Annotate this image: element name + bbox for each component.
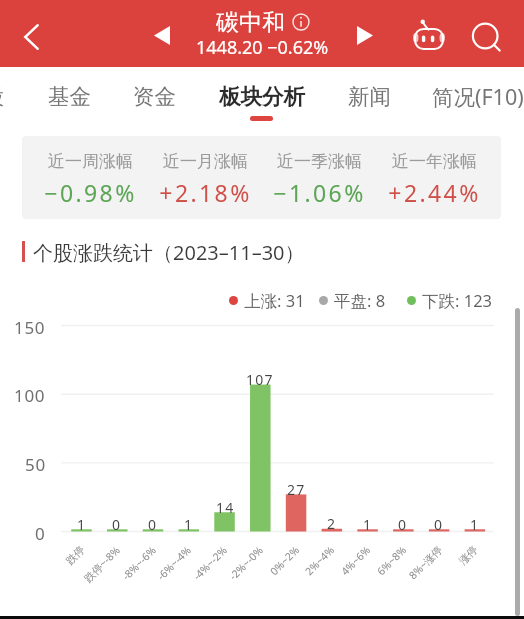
button[interactable]: 近一月涨幅	[145, 136, 265, 219]
staticText: −0.98%	[44, 177, 137, 208]
staticText: 简况(F10)	[432, 82, 524, 111]
staticText: 个股涨跌统计（2023–11–30）	[33, 239, 305, 266]
button[interactable]: 基金	[9, 72, 129, 120]
staticText: 0	[148, 515, 158, 530]
button[interactable]: 简况(F10)	[418, 72, 524, 120]
staticText: 1	[77, 515, 87, 530]
staticText: 4%~6%	[338, 543, 373, 578]
staticText: 涨停	[456, 543, 480, 567]
button[interactable]: 个股	[0, 72, 42, 120]
staticText: 6%~8%	[374, 543, 409, 578]
staticText: 14	[216, 498, 235, 513]
button[interactable]: 近一年涨幅	[374, 136, 494, 219]
staticText: 2	[327, 514, 337, 529]
staticText: 107	[246, 370, 274, 385]
button[interactable]: Back	[9, 14, 54, 59]
staticText: 跌停	[63, 543, 87, 567]
staticText: 1	[363, 515, 373, 530]
button[interactable]: 新闻	[309, 72, 429, 120]
staticText: 2%~4%	[302, 543, 337, 578]
staticText: 100	[14, 384, 46, 406]
staticText: -2%~-0%	[226, 543, 266, 583]
button[interactable]: Search	[465, 14, 505, 54]
staticText: 资金	[133, 83, 176, 110]
staticText: -8%~-6%	[119, 543, 159, 583]
staticText: 个股	[0, 83, 4, 110]
staticText: 150	[14, 316, 46, 338]
staticText: 近一年涨幅	[392, 151, 477, 172]
button[interactable]: 上涨: 31	[229, 289, 305, 312]
staticText: 0	[434, 515, 444, 530]
button[interactable]: Previous sector	[144, 18, 179, 53]
staticText: 上涨: 31	[244, 289, 305, 312]
button[interactable]: 近一季涨幅	[259, 136, 379, 219]
button[interactable]: 近一周涨幅	[30, 136, 150, 219]
button[interactable]: 板块分析	[202, 72, 322, 120]
staticText: 近一月涨幅	[163, 151, 248, 172]
staticText: 1	[184, 515, 194, 530]
staticText: 0%~2%	[267, 543, 302, 578]
staticText: +2.44%	[388, 177, 481, 208]
staticText: 1448.20 −0.62%	[196, 35, 329, 60]
button[interactable]: 平盘: 8	[319, 289, 386, 312]
staticText: 1	[470, 515, 480, 530]
staticText: 0	[398, 515, 408, 530]
button[interactable]: 资金	[94, 72, 214, 120]
staticText: −1.06%	[273, 177, 366, 208]
staticText: 跌停~-8%	[81, 543, 123, 585]
button[interactable]: AI assistant	[409, 16, 445, 52]
staticText: 基金	[48, 83, 91, 110]
button[interactable]: 下跌: 123	[407, 289, 493, 312]
staticText: +2.18%	[159, 177, 252, 208]
staticText: 下跌: 123	[422, 289, 493, 312]
staticText: 平盘: 8	[334, 289, 386, 312]
staticText: 0	[35, 522, 46, 544]
staticText: 新闻	[348, 83, 391, 110]
staticText: 50	[25, 453, 46, 475]
staticText: 8%~涨停	[406, 543, 445, 582]
staticText: -4%~-2%	[190, 543, 230, 583]
button[interactable]: Next sector	[347, 18, 382, 53]
staticText: 近一周涨幅	[48, 151, 133, 172]
staticText: 27	[287, 480, 306, 495]
staticText: 0	[112, 515, 122, 530]
staticText: 碳中和	[216, 8, 285, 37]
staticText: -6%~-4%	[154, 543, 194, 583]
staticText: 近一季涨幅	[277, 151, 362, 172]
staticText: 板块分析	[219, 83, 305, 110]
